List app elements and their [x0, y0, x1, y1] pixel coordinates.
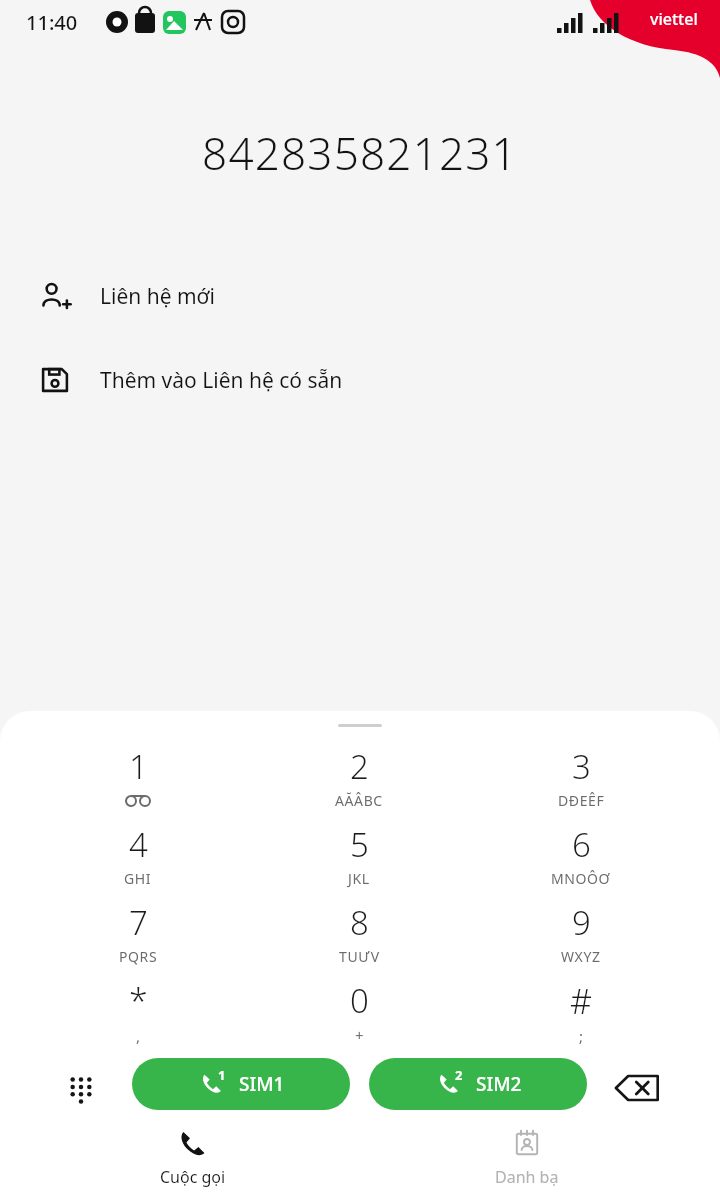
button[interactable]: 8 [304, 900, 414, 974]
staticText: 6 [572, 822, 591, 867]
staticText: # [570, 978, 592, 1024]
staticText: SIM1 [239, 1071, 285, 1097]
staticText: 1 [129, 744, 148, 789]
staticText: JKL [348, 869, 370, 888]
button[interactable]: Cuộc gọi [133, 1129, 253, 1195]
staticText: 1 [218, 1066, 226, 1084]
button[interactable]: 6 [526, 822, 636, 896]
staticText: 5 [350, 822, 369, 867]
staticText: , [136, 1026, 141, 1046]
button[interactable]: Keypad [52, 1059, 110, 1117]
staticText: Thêm vào Liên hệ có sẵn [100, 366, 343, 395]
staticText: WXYZ [561, 947, 601, 966]
staticText: * [129, 978, 148, 1024]
staticText: ; [579, 1026, 584, 1046]
staticText: MNOÔƠ [551, 869, 611, 888]
staticText: PQRS [119, 947, 158, 966]
staticText: 842835821231 [202, 123, 518, 183]
staticText: SIM2 [476, 1071, 522, 1097]
staticText: Danh bạ [495, 1166, 559, 1188]
button[interactable]: 9 [526, 900, 636, 974]
staticText: Liên hệ mới [100, 282, 215, 311]
button[interactable]: Backspace [606, 1059, 668, 1117]
button[interactable]: 1 [132, 1058, 350, 1110]
button[interactable]: 1 [83, 744, 193, 818]
staticText: 0 [350, 978, 369, 1023]
staticText: DĐEÊF [558, 791, 605, 810]
staticText: 9 [572, 900, 591, 945]
staticText: 11:40 [26, 9, 78, 36]
button[interactable]: 2 [304, 744, 414, 818]
staticText: 3 [572, 744, 591, 789]
staticText: 2 [350, 744, 369, 789]
button[interactable]: Danh bạ [467, 1129, 587, 1195]
button[interactable]: * [83, 978, 193, 1052]
button[interactable]: 0 [304, 978, 414, 1052]
button[interactable]: 3 [526, 744, 636, 818]
staticText: 2 [455, 1066, 463, 1084]
button[interactable]: 4 [83, 822, 193, 896]
staticText: 8 [350, 900, 369, 945]
staticText: 4 [129, 822, 148, 867]
button[interactable]: Thêm vào Liên hệ có sẵn [0, 349, 720, 411]
staticText: GHI [124, 869, 152, 888]
button[interactable]: 7 [83, 900, 193, 974]
staticText: TUƯV [339, 947, 380, 966]
staticText: + [355, 1025, 365, 1045]
staticText: AĂÂBC [335, 791, 383, 810]
button[interactable]: 2 [369, 1058, 587, 1110]
staticText: 7 [129, 900, 148, 945]
button[interactable]: 5 [304, 822, 414, 896]
staticText: viettel [650, 8, 698, 30]
button[interactable]: Liên hệ mới [0, 265, 720, 327]
staticText: Cuộc gọi [160, 1166, 226, 1188]
button[interactable]: # [526, 978, 636, 1052]
